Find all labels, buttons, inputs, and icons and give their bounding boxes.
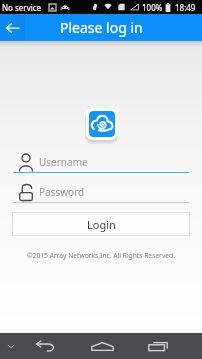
button[interactable]: Recents (144, 333, 171, 359)
staticText: No service (2, 2, 42, 13)
staticText: 100% (142, 2, 163, 13)
button[interactable]: Hide keyboard (2, 338, 19, 355)
button[interactable]: Back (0, 14, 25, 41)
staticText: ©2015 Array Networks,Inc. All Rights Res… (0, 251, 202, 260)
staticText: Login (87, 217, 116, 232)
staticText: Password (39, 185, 85, 199)
staticText: 18:49 (175, 2, 196, 13)
staticText: Username (39, 155, 88, 169)
button[interactable]: Home (88, 333, 116, 359)
button[interactable]: Back (32, 333, 59, 359)
button[interactable]: Login (12, 212, 190, 236)
staticText: Please log in (60, 18, 143, 37)
